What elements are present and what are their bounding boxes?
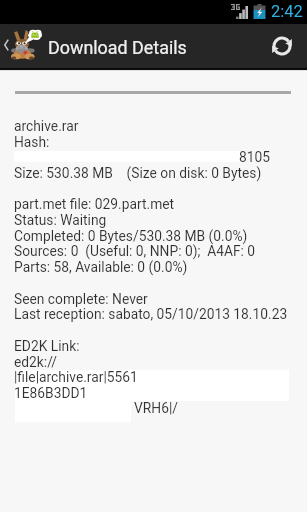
- button[interactable]: Navigate up: [0, 24, 46, 68]
- staticText: Parts: 58, Available: 0 (0.0%): [14, 259, 188, 275]
- staticText: Seen complete: Never: [14, 291, 148, 307]
- staticText: part.met file: 029.part.met: [14, 196, 175, 212]
- staticText: VRH6|/: [134, 400, 178, 416]
- staticText: 1E86B3DD1: [14, 385, 88, 401]
- staticText: Last reception: sabato, 05/10/2013 18.10…: [14, 306, 288, 322]
- staticText: 8105: [239, 149, 271, 165]
- staticText: 2:42: [271, 2, 303, 21]
- staticText: ED2K Link:: [14, 338, 80, 354]
- staticText: Size: 530.38 MB (Size on disk: 0 Bytes): [14, 165, 262, 181]
- staticText: Sources: 0 (Useful: 0, NNP: 0); A4AF: 0: [14, 243, 256, 259]
- staticText: Download Details: [48, 37, 187, 58]
- staticText: archive.rar: [14, 118, 79, 134]
- staticText: Hash:: [14, 134, 50, 150]
- button[interactable]: Refresh: [259, 24, 305, 68]
- staticText: Status: Waiting: [14, 212, 107, 228]
- staticText: ed2k://: [14, 354, 58, 370]
- staticText: |file|archive.rar|5561: [14, 369, 138, 385]
- staticText: Completed: 0 Bytes/530.38 MB (0.0%): [14, 228, 248, 244]
